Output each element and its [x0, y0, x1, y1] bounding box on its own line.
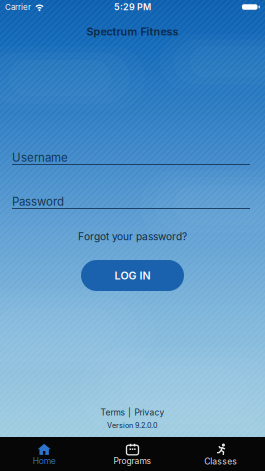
staticText: |	[128, 407, 131, 418]
staticText: Forgot your password?	[78, 230, 187, 243]
staticText: 5:29 PM	[114, 2, 151, 12]
button[interactable]: Terms	[100, 407, 124, 418]
staticText: LOG IN	[114, 269, 150, 282]
staticText: Programs	[113, 456, 151, 466]
staticText: Privacy	[134, 407, 164, 418]
staticText: Home	[33, 456, 56, 466]
button[interactable]: Classes	[177, 437, 265, 471]
button[interactable]: Forgot your password?	[78, 230, 187, 243]
staticText: Username	[12, 151, 68, 164]
staticText: Spectrum Fitness	[86, 25, 178, 38]
staticText: Terms	[100, 407, 124, 418]
button[interactable]: LOG IN	[81, 260, 184, 291]
staticText: Password	[12, 195, 64, 208]
button[interactable]: Privacy	[134, 407, 164, 418]
button[interactable]: Programs	[88, 437, 177, 471]
staticText: Classes	[204, 456, 237, 467]
button[interactable]: Username	[0, 151, 265, 165]
staticText: Carrier	[5, 2, 31, 12]
button[interactable]: Home	[0, 437, 88, 471]
button[interactable]: Password	[0, 195, 265, 209]
staticText: Version 9.2.0.0	[107, 421, 158, 430]
